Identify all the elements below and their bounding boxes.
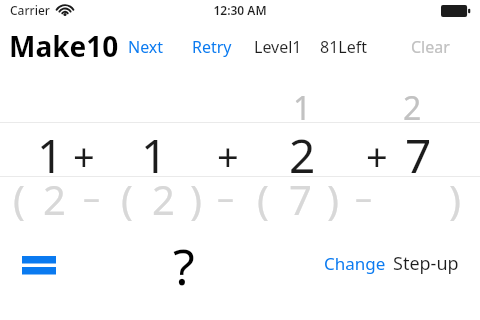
staticText: 2 [152, 172, 175, 226]
button[interactable]: Make10 [9, 27, 119, 65]
button[interactable]: Next [128, 36, 164, 58]
staticText: Level1 [254, 36, 302, 58]
button[interactable]: Change [324, 252, 386, 275]
button[interactable]: Step-up [393, 251, 459, 276]
staticText: + [366, 130, 388, 182]
button[interactable]: Retry [192, 36, 232, 58]
staticText: 1 [293, 86, 312, 130]
button[interactable]: Clear [411, 36, 450, 58]
staticText: 2 [43, 172, 66, 226]
other: Wi-Fi [57, 4, 73, 16]
staticText: – [355, 174, 372, 220]
staticText: ) [190, 172, 202, 226]
staticText: 1 [37, 124, 64, 187]
staticText: ? [173, 232, 195, 288]
staticText: – [217, 174, 234, 220]
staticText: Carrier [10, 2, 50, 18]
staticText: 81Left [320, 36, 367, 58]
staticText: 7 [289, 172, 312, 226]
button[interactable]: Equals [12, 246, 68, 286]
staticText: ( [13, 172, 25, 226]
button[interactable]: Hint [160, 232, 208, 288]
staticText: – [83, 174, 100, 220]
staticText: ( [121, 172, 133, 226]
other: Battery full [441, 5, 470, 17]
staticText: ( [257, 172, 269, 226]
staticText: + [217, 130, 239, 182]
staticText: 2 [403, 86, 422, 130]
staticText: ) [449, 172, 461, 226]
staticText: + [73, 130, 95, 182]
staticText: 7 [405, 124, 432, 187]
staticText: ) [327, 172, 339, 226]
staticText: 1 [141, 124, 168, 187]
staticText: 12:30 AM [213, 2, 267, 18]
staticText: 2 [289, 124, 316, 187]
